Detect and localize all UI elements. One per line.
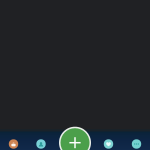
- button[interactable]: Messages: [122, 133, 150, 150]
- button[interactable]: Saved: [94, 133, 122, 150]
- button[interactable]: Profile: [27, 133, 55, 150]
- button[interactable]: Add: [59, 127, 91, 150]
- button[interactable]: Jobs: [0, 133, 27, 150]
